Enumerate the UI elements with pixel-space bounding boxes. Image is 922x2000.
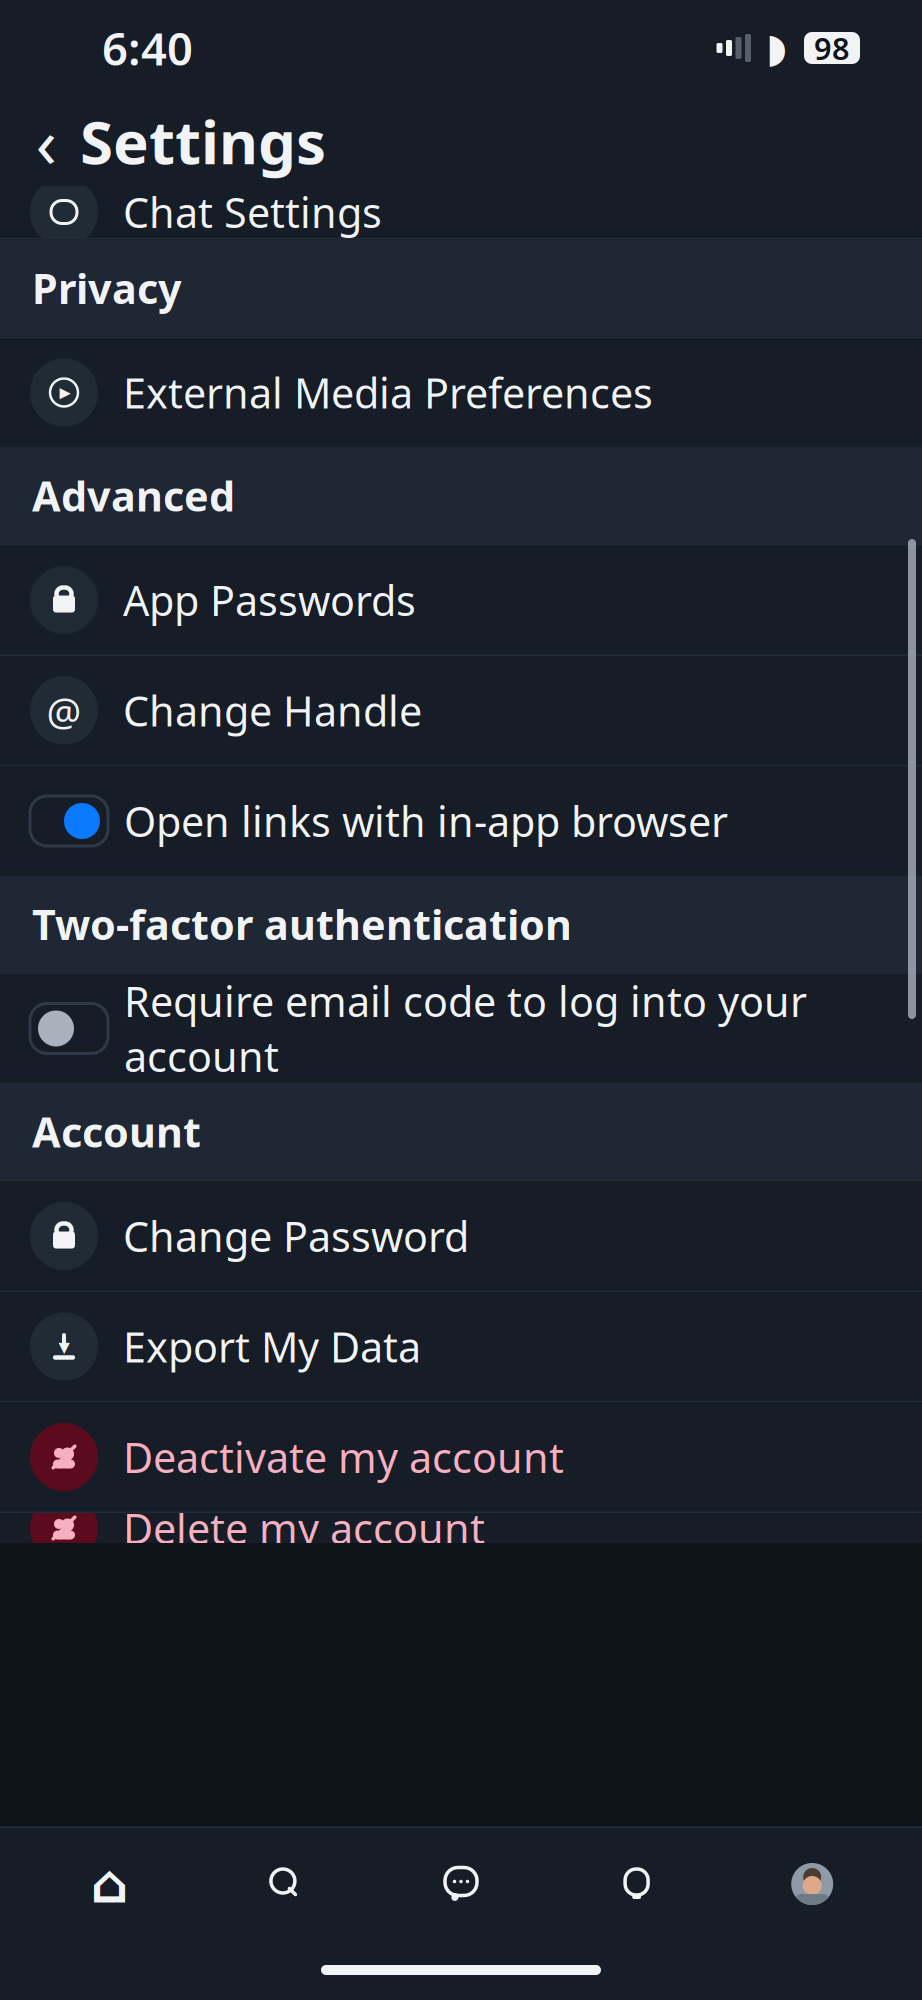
- staticText: Open links with in-app browser: [124, 794, 728, 848]
- staticText: ▼: [58, 1339, 69, 1355]
- button[interactable]: ▶: [0, 338, 922, 447]
- staticText: Advanced: [32, 468, 235, 523]
- button[interactable]: Profile: [724, 1863, 900, 1905]
- staticText: Delete my account: [123, 1501, 485, 1555]
- staticText: ▶: [59, 384, 70, 401]
- staticText: App Passwords: [123, 573, 416, 627]
- button[interactable]: Open links with in-app browser: [0, 766, 922, 875]
- button[interactable]: Search: [198, 1864, 373, 1904]
- button[interactable]: Delete my account: [0, 1473, 922, 1582]
- staticText: Account: [32, 1104, 201, 1159]
- staticText: @: [46, 685, 81, 736]
- button[interactable]: ▼: [0, 1292, 922, 1401]
- staticText: Change Handle: [123, 683, 422, 738]
- button[interactable]: Require email code to log into your acco…: [0, 974, 922, 1083]
- button[interactable]: Chat Settings: [0, 157, 922, 266]
- staticText: Two-factor authentication: [32, 897, 572, 951]
- staticText: Deactivate my account: [123, 1430, 564, 1484]
- button[interactable]: Notifications: [549, 1864, 724, 1904]
- button[interactable]: Back: [18, 106, 74, 176]
- staticText: ⌂: [91, 1854, 129, 1914]
- staticText: Settings: [80, 101, 326, 181]
- button[interactable]: Home: [22, 1864, 198, 1904]
- staticText: External Media Preferences: [123, 365, 653, 420]
- staticText: ‹: [35, 95, 56, 187]
- button[interactable]: App Passwords: [0, 545, 922, 654]
- staticText: Chat Settings: [123, 185, 382, 239]
- staticText: Require email code to log into your acco…: [124, 974, 807, 1083]
- staticText: Change Password: [123, 1209, 469, 1263]
- staticText: 98: [814, 28, 850, 68]
- button[interactable]: Deactivate my account: [0, 1402, 922, 1511]
- button[interactable]: @: [0, 656, 922, 765]
- staticText: Privacy: [32, 261, 182, 315]
- staticText: ◗: [766, 25, 787, 71]
- button[interactable]: Change Password: [0, 1181, 922, 1290]
- staticText: 6:40: [102, 18, 193, 78]
- staticText: Export My Data: [123, 1319, 421, 1374]
- button[interactable]: Chat: [373, 1864, 549, 1904]
